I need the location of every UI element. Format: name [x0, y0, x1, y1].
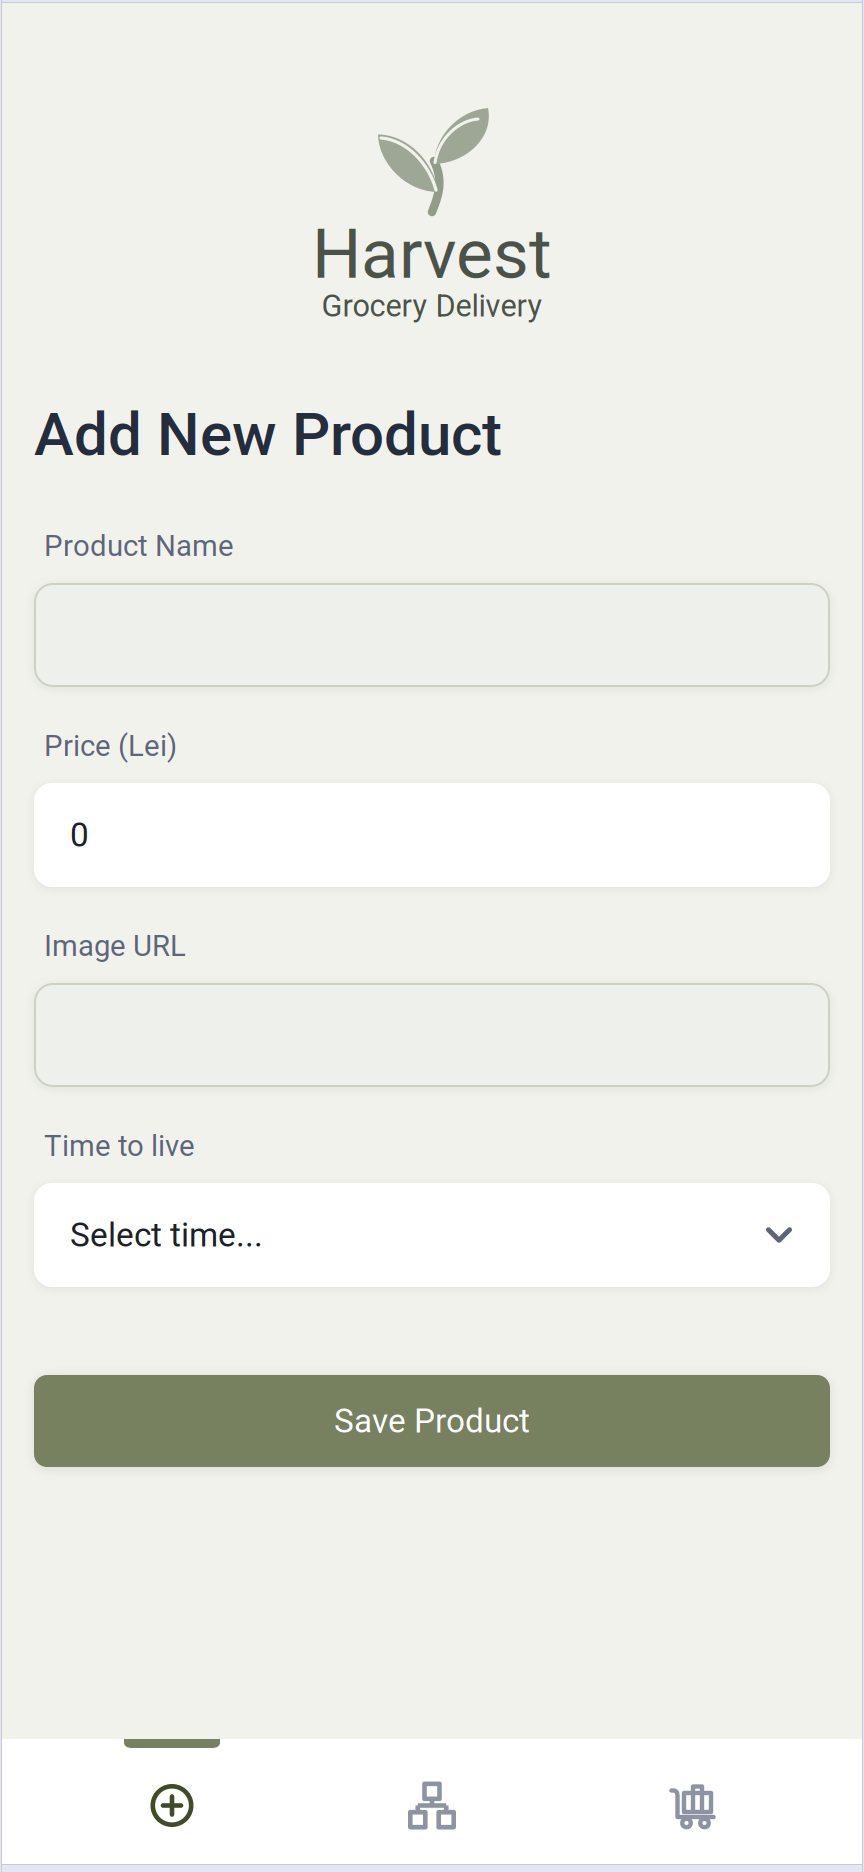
staticText: Image URL	[44, 929, 186, 963]
staticText: Add New Product	[34, 399, 502, 470]
button[interactable]: Add product	[42, 1739, 302, 1872]
button[interactable]	[34, 583, 830, 687]
staticText: Harvest	[312, 213, 552, 295]
staticText: Time to live	[44, 1129, 195, 1163]
staticText: 0	[70, 815, 89, 855]
staticText: Price (Lei)	[44, 729, 177, 763]
button[interactable]: Save Product	[34, 1375, 830, 1467]
staticText: Product Name	[44, 529, 234, 563]
staticText: Grocery Delivery	[321, 288, 542, 324]
button[interactable]: Select time...	[34, 1183, 830, 1287]
button[interactable]: Orders	[562, 1739, 822, 1872]
button[interactable]	[34, 983, 830, 1087]
staticText: Select time...	[70, 1215, 263, 1255]
button[interactable]: 0	[34, 783, 830, 887]
button[interactable]: Categories	[302, 1739, 562, 1872]
staticText: Save Product	[334, 1401, 530, 1441]
